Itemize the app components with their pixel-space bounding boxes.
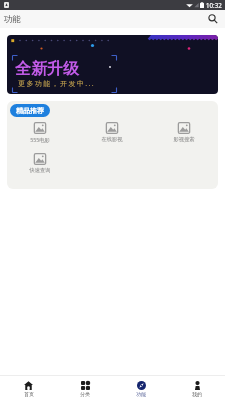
- button[interactable]: 全新升级: [7, 35, 218, 94]
- staticText: 10:32: [206, 1, 222, 9]
- button[interactable]: 影视搜索: [148, 122, 220, 143]
- staticText: 首页: [24, 391, 34, 397]
- button[interactable]: 功能: [113, 379, 169, 397]
- staticText: 影视搜索: [173, 136, 195, 143]
- staticText: 快速查询: [29, 167, 51, 174]
- button[interactable]: 我的: [169, 379, 225, 397]
- staticText: 更多功能，开发中...: [18, 79, 96, 89]
- button[interactable]: 555电影: [3, 122, 76, 143]
- staticText: 精品推荐: [16, 106, 44, 115]
- button[interactable]: 在线影视: [76, 122, 148, 143]
- staticText: 在线影视: [101, 136, 123, 143]
- staticText: 功能: [136, 391, 146, 397]
- button[interactable]: 首页: [0, 379, 57, 397]
- staticText: 我的: [192, 391, 202, 397]
- staticText: 555电影: [30, 136, 50, 143]
- button[interactable]: 快速查询: [3, 153, 76, 174]
- staticText: 功能: [4, 14, 21, 25]
- button[interactable]: 分类: [57, 379, 113, 397]
- staticText: 分类: [80, 391, 90, 397]
- button[interactable]: Search: [205, 11, 221, 27]
- button[interactable]: 精品推荐: [10, 104, 50, 117]
- staticText: 全新升级: [15, 59, 79, 79]
